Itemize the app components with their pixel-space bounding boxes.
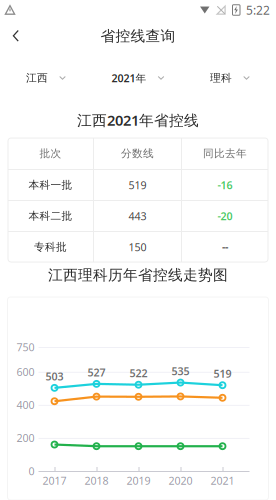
- staticText: 2019: [126, 473, 150, 488]
- staticText: 519: [213, 367, 231, 381]
- staticText: 2021: [210, 473, 234, 488]
- staticText: 批次: [39, 147, 61, 160]
- button[interactable]: 理科: [184, 65, 276, 91]
- button[interactable]: 2021年: [92, 65, 184, 91]
- staticText: 535: [171, 364, 189, 378]
- button[interactable]: Back: [0, 20, 32, 52]
- staticText: 750: [16, 340, 34, 354]
- staticText: 2020: [168, 473, 192, 488]
- staticText: -20: [217, 209, 232, 223]
- staticText: 527: [87, 365, 105, 379]
- staticText: 2021年: [111, 71, 146, 85]
- staticText: 本科二批: [28, 209, 72, 222]
- staticText: 同比去年: [203, 147, 247, 160]
- staticText: 5:22: [246, 2, 270, 18]
- staticText: 分数线: [121, 147, 154, 160]
- staticText: 519: [128, 178, 146, 192]
- staticText: 专科批: [34, 240, 67, 253]
- staticText: 200: [16, 431, 34, 445]
- staticText: 150: [128, 240, 146, 254]
- staticText: 理科: [210, 71, 232, 84]
- staticText: 江西2021年省控线: [77, 110, 199, 130]
- staticText: 503: [45, 369, 63, 383]
- staticText: 江西: [26, 71, 48, 84]
- staticText: 522: [129, 366, 147, 380]
- button[interactable]: 江西: [0, 65, 92, 91]
- staticText: 本科一批: [28, 178, 72, 191]
- staticText: 0: [28, 464, 34, 478]
- staticText: 400: [16, 398, 34, 412]
- staticText: 443: [128, 209, 146, 223]
- staticText: -16: [217, 178, 232, 192]
- staticText: 江西理科历年省控线走势图: [48, 266, 228, 284]
- staticText: 2017: [42, 473, 66, 488]
- staticText: --: [222, 240, 228, 254]
- staticText: 600: [16, 365, 34, 379]
- staticText: 省控线查询: [100, 27, 175, 45]
- staticText: 2018: [84, 473, 108, 488]
